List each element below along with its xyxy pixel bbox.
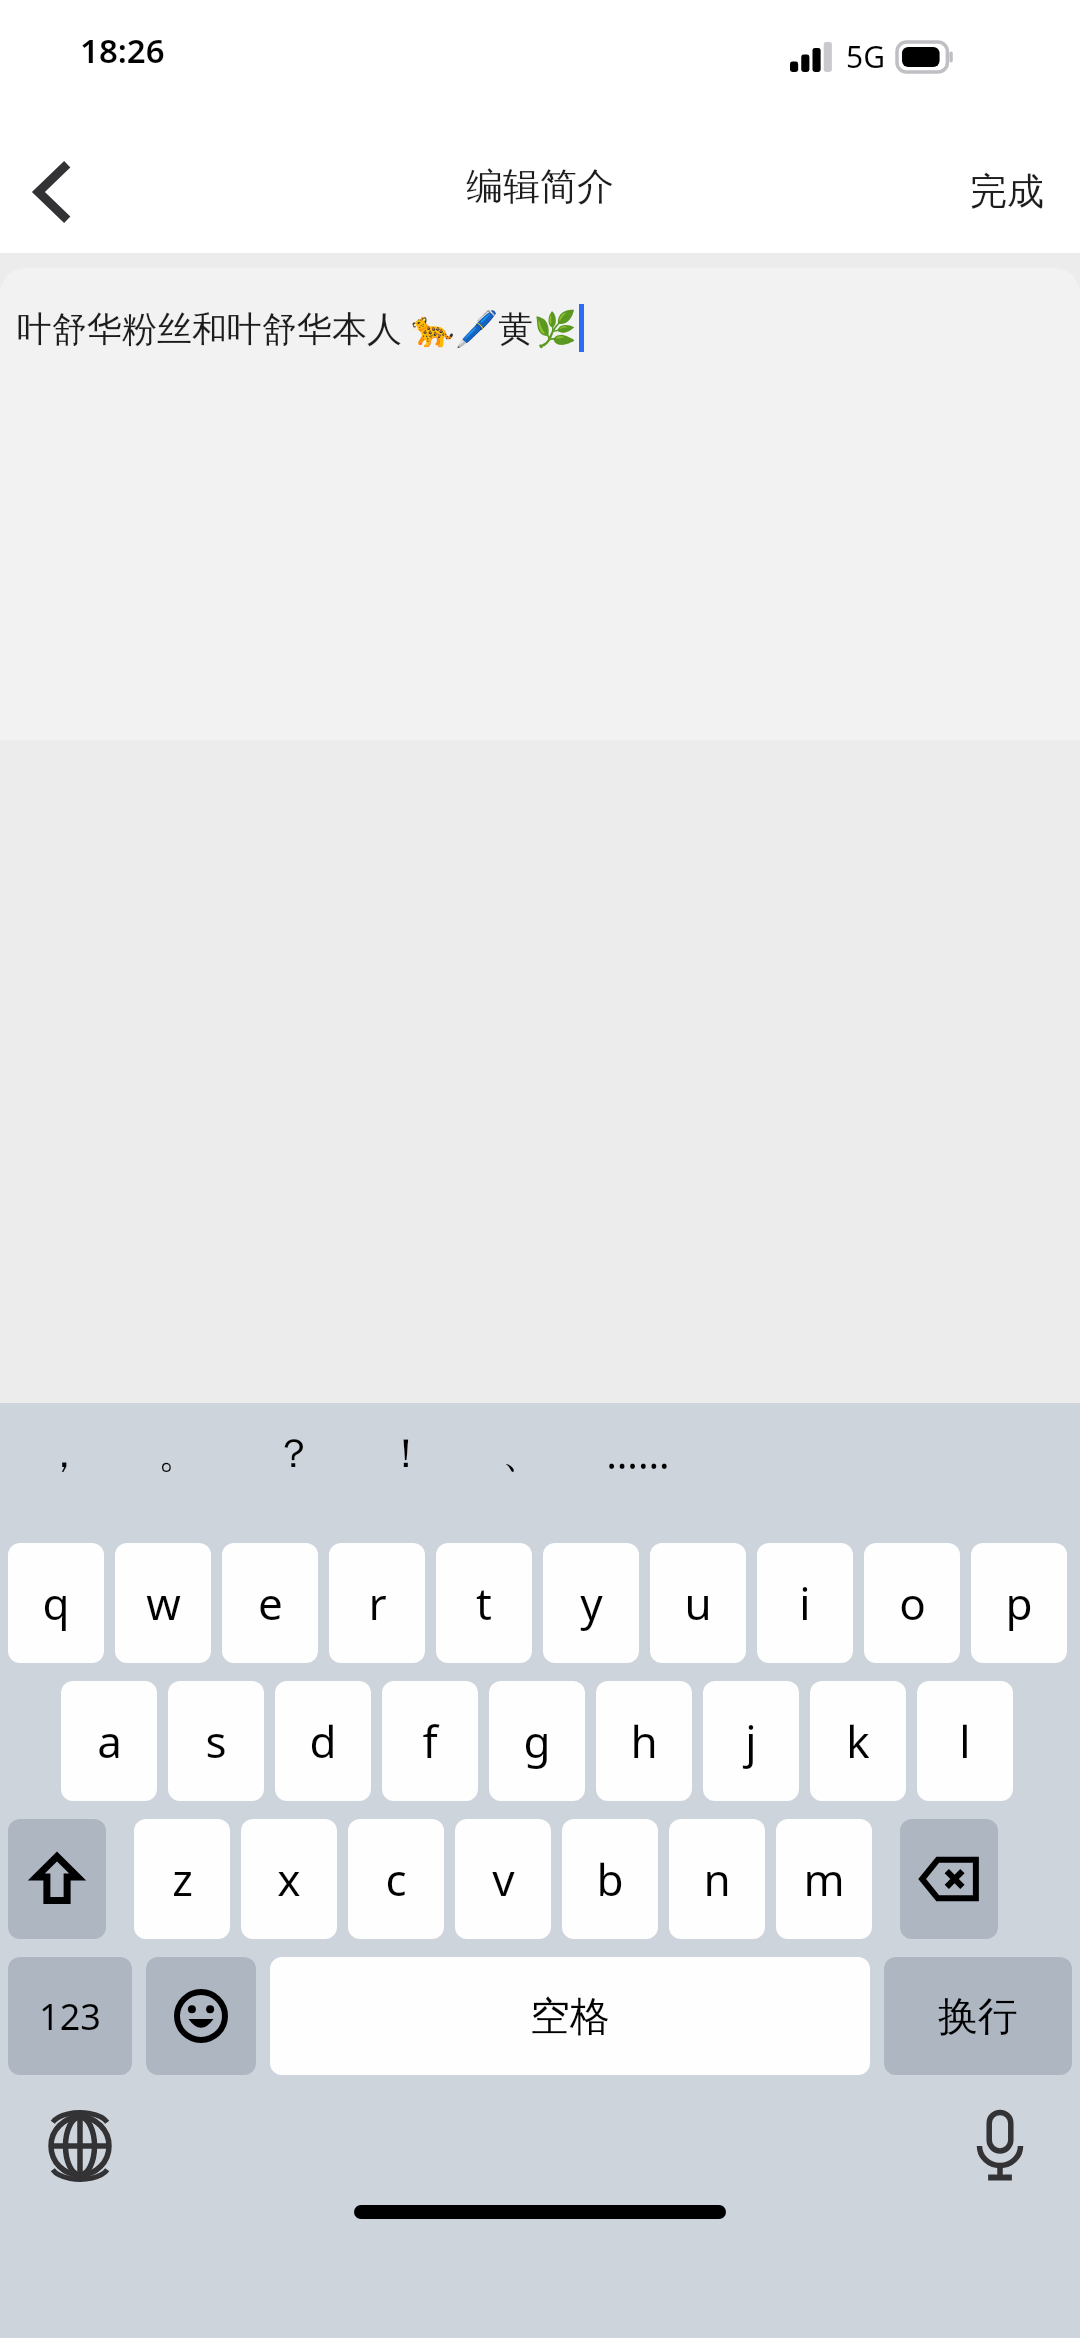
staticText: b xyxy=(596,1849,624,1909)
staticText: r xyxy=(368,1573,387,1633)
staticText: l xyxy=(959,1711,971,1771)
button[interactable]: Back xyxy=(4,146,100,238)
button[interactable]: ？ xyxy=(252,1411,336,1495)
staticText: y xyxy=(580,1573,603,1633)
button[interactable]: a xyxy=(61,1681,157,1801)
button[interactable]: v xyxy=(455,1819,551,1939)
button[interactable]: 叶舒华粉丝和叶舒华本人 🐆🖊️黄🌿 xyxy=(0,268,1080,740)
staticText: g xyxy=(523,1711,551,1771)
staticText: t xyxy=(476,1573,492,1633)
staticText: 换行 xyxy=(938,1991,1018,2041)
staticText: n xyxy=(703,1849,731,1909)
staticText: e xyxy=(258,1573,283,1633)
staticText: 5G xyxy=(846,36,885,77)
staticText: 123 xyxy=(39,1992,101,2041)
button[interactable]: i xyxy=(757,1543,853,1663)
button[interactable]: 、 xyxy=(480,1411,564,1495)
staticText: 18:26 xyxy=(80,28,165,73)
staticText: k xyxy=(846,1711,870,1771)
staticText: ！ xyxy=(386,1428,426,1478)
staticText: z xyxy=(172,1849,193,1909)
button[interactable]: o xyxy=(864,1543,960,1663)
button[interactable]: Shift xyxy=(8,1819,106,1939)
button[interactable]: ， xyxy=(22,1411,106,1495)
staticText: v xyxy=(492,1849,515,1909)
staticText: x xyxy=(277,1849,301,1909)
button[interactable]: w xyxy=(115,1543,211,1663)
staticText: q xyxy=(42,1573,70,1633)
button[interactable]: h xyxy=(596,1681,692,1801)
button[interactable]: 空格 xyxy=(270,1957,870,2075)
button[interactable]: r xyxy=(329,1543,425,1663)
button[interactable]: Change keyboard language xyxy=(28,2094,132,2198)
staticText: u xyxy=(684,1573,712,1633)
button[interactable]: q xyxy=(8,1543,104,1663)
button[interactable]: ！ xyxy=(364,1411,448,1495)
button[interactable]: e xyxy=(222,1543,318,1663)
staticText: …… xyxy=(606,1426,670,1480)
button[interactable]: …… xyxy=(596,1411,680,1495)
staticText: ， xyxy=(44,1428,84,1478)
staticText: 完成 xyxy=(970,168,1044,215)
button[interactable]: b xyxy=(562,1819,658,1939)
button[interactable]: j xyxy=(703,1681,799,1801)
staticText: p xyxy=(1005,1573,1033,1633)
button[interactable]: 换行 xyxy=(884,1957,1072,2075)
staticText: 编辑简介 xyxy=(466,163,614,210)
staticText: a xyxy=(97,1711,122,1771)
button[interactable]: x xyxy=(241,1819,337,1939)
button[interactable]: 完成 xyxy=(946,148,1068,235)
button[interactable]: n xyxy=(669,1819,765,1939)
button[interactable]: l xyxy=(917,1681,1013,1801)
staticText: w xyxy=(146,1573,181,1633)
staticText: o xyxy=(899,1573,926,1633)
button[interactable]: k xyxy=(810,1681,906,1801)
staticText: ？ xyxy=(274,1428,314,1478)
button[interactable]: s xyxy=(168,1681,264,1801)
button[interactable]: Backspace xyxy=(900,1819,998,1939)
button[interactable]: y xyxy=(543,1543,639,1663)
button[interactable]: c xyxy=(348,1819,444,1939)
staticText: h xyxy=(630,1711,658,1771)
staticText: c xyxy=(385,1849,407,1909)
staticText: d xyxy=(309,1711,337,1771)
staticText: 。 xyxy=(158,1428,198,1478)
button[interactable]: u xyxy=(650,1543,746,1663)
button[interactable]: g xyxy=(489,1681,585,1801)
button[interactable]: m xyxy=(776,1819,872,1939)
button[interactable]: 。 xyxy=(136,1411,220,1495)
staticText: 叶舒华粉丝和叶舒华本人 🐆🖊️黄🌿 xyxy=(17,304,577,352)
button[interactable]: Emoji xyxy=(146,1957,256,2075)
staticText: m xyxy=(803,1849,845,1909)
button[interactable]: p xyxy=(971,1543,1067,1663)
button[interactable]: Voice input xyxy=(948,2094,1052,2198)
button[interactable]: t xyxy=(436,1543,532,1663)
button[interactable]: d xyxy=(275,1681,371,1801)
staticText: j xyxy=(745,1711,757,1771)
staticText: 、 xyxy=(502,1428,542,1478)
staticText: i xyxy=(799,1573,811,1633)
button[interactable]: 123 xyxy=(8,1957,132,2075)
staticText: 空格 xyxy=(530,1991,610,2041)
button[interactable]: f xyxy=(382,1681,478,1801)
button[interactable]: z xyxy=(134,1819,230,1939)
staticText: s xyxy=(205,1711,227,1771)
staticText: f xyxy=(422,1711,438,1771)
